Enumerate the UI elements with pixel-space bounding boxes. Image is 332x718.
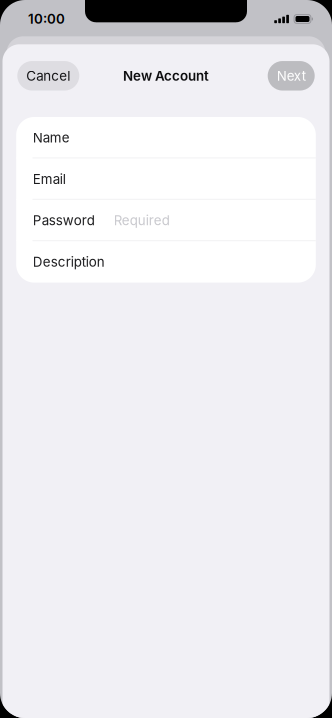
staticText: New Account (123, 68, 209, 84)
button[interactable]: Email (16, 158, 316, 200)
staticText: Password (33, 212, 95, 228)
button[interactable]: Description (16, 241, 316, 283)
staticText: Next (277, 68, 306, 84)
staticText: Email (33, 171, 66, 187)
staticText: Description (33, 254, 105, 270)
staticText: 10:00 (28, 11, 65, 27)
button[interactable]: Password (16, 200, 316, 241)
button[interactable]: Cancel (17, 61, 79, 90)
staticText: Name (33, 130, 70, 146)
button[interactable]: Next (268, 61, 315, 90)
button[interactable]: Name (16, 117, 316, 158)
staticText: Required (114, 212, 170, 228)
staticText: Cancel (26, 68, 70, 84)
